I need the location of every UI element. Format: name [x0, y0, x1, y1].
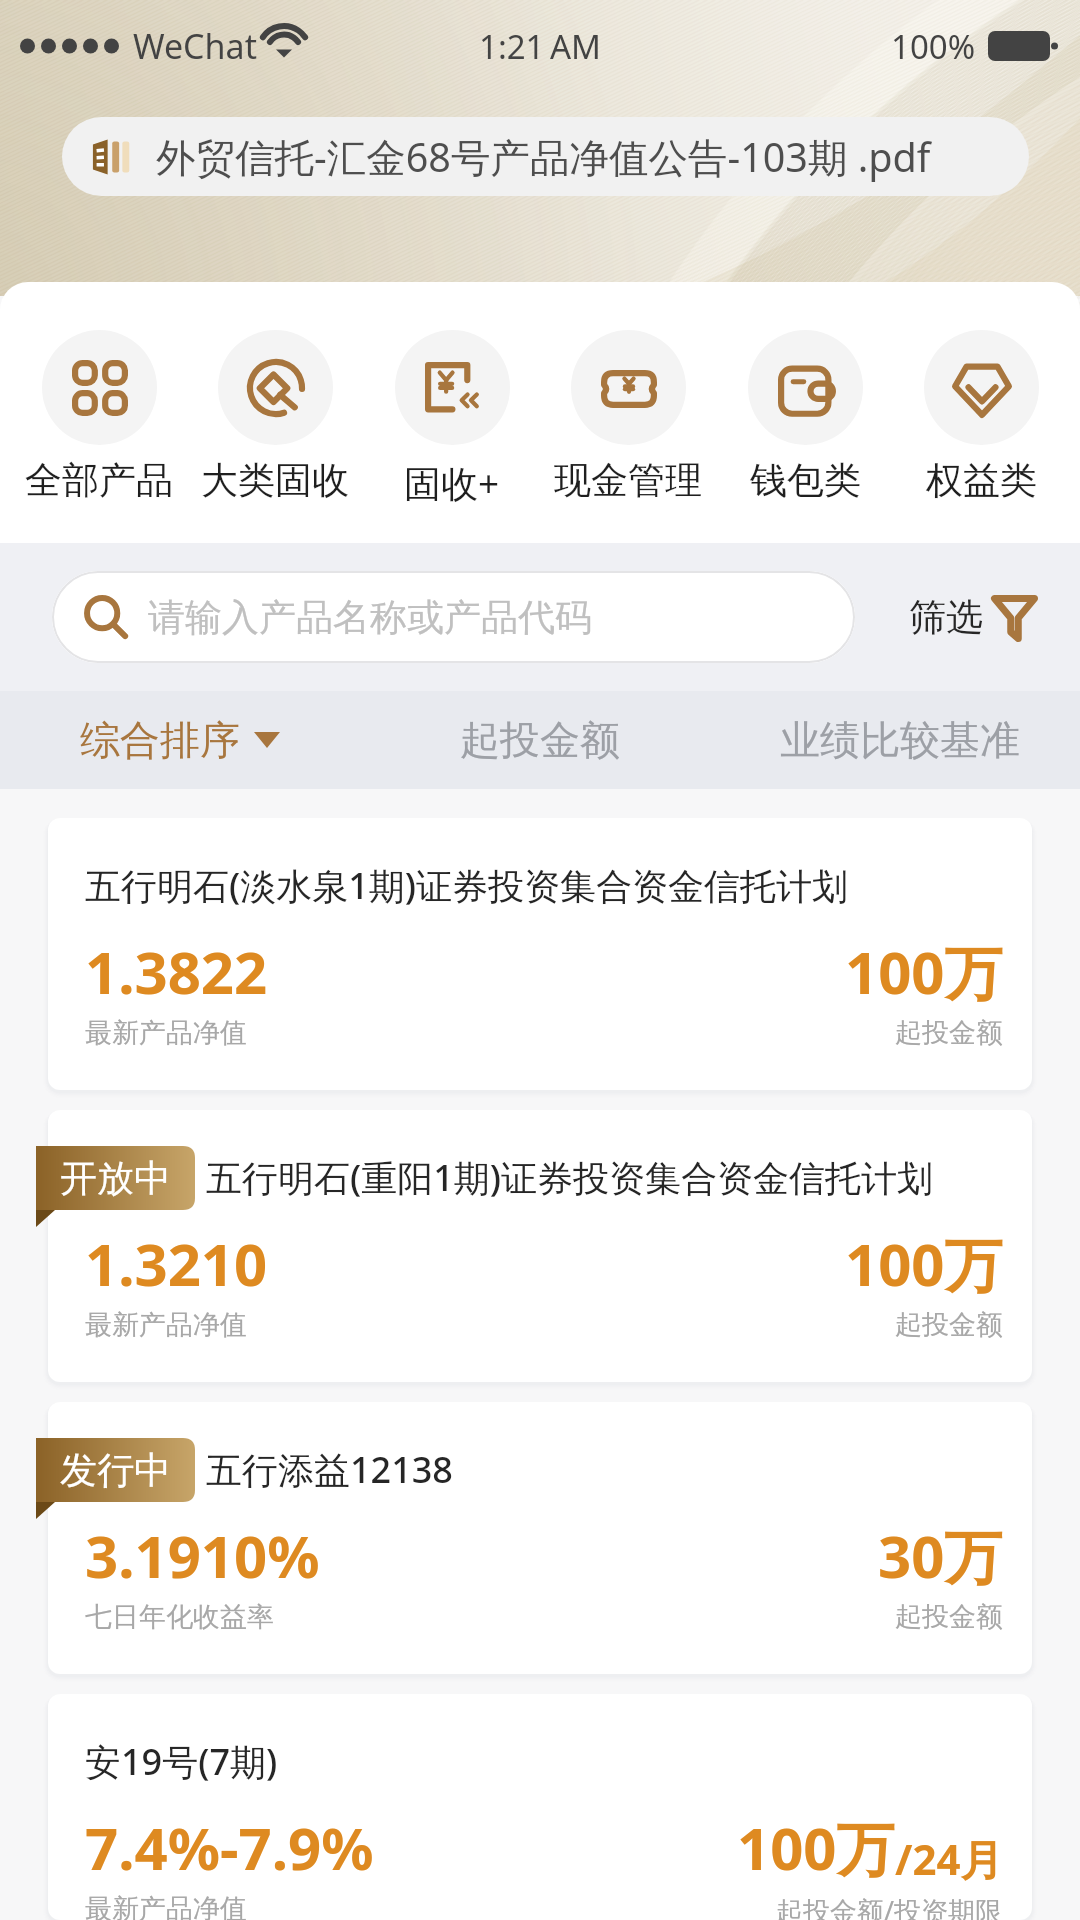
button[interactable]: 大类固收: [201, 330, 349, 504]
staticText: 五行明石(重阳1期)证券投资集合资金信托计划: [206, 1153, 934, 1202]
staticText: 起投金额/投资期限: [776, 1892, 1003, 1920]
staticText: 100万: [737, 1808, 895, 1887]
staticText: 综合排序: [80, 715, 240, 765]
staticText: WeChat: [133, 23, 257, 69]
button[interactable]: 外贸信托-汇金68号产品净值公告-103期 .pdf: [62, 117, 1029, 196]
staticText: 最新产品净值: [85, 1016, 247, 1050]
button[interactable]: 固收+: [378, 330, 526, 508]
staticText: 筛选: [909, 594, 983, 641]
staticText: 开放中: [60, 1155, 171, 1202]
staticText: 100万: [845, 1224, 1003, 1303]
button[interactable]: 全部产品: [25, 330, 173, 504]
staticText: 起投金额: [895, 1016, 1003, 1050]
staticText: 五行明石(淡水泉1期)证券投资集合资金信托计划: [85, 861, 849, 910]
button[interactable]: 业绩比较基准: [720, 691, 1080, 789]
staticText: 七日年化收益率: [85, 1600, 274, 1634]
staticText: 1.3822: [85, 932, 268, 1011]
staticText: 100%: [891, 24, 976, 69]
button[interactable]: 五行明石(淡水泉1期)证券投资集合资金信托计划: [48, 818, 1032, 1090]
button[interactable]: 现金管理: [554, 330, 702, 504]
staticText: 起投金额: [460, 715, 620, 765]
button[interactable]: 五行明石(重阳1期)证券投资集合资金信托计划: [48, 1110, 1032, 1382]
staticText: 最新产品净值: [85, 1308, 247, 1342]
staticText: 安19号(7期): [85, 1737, 278, 1786]
staticText: 起投金额: [895, 1600, 1003, 1634]
other: Search: [82, 593, 130, 641]
staticText: /24月: [895, 1830, 1003, 1887]
staticText: 30万: [878, 1516, 1003, 1595]
staticText: 3.1910%: [85, 1516, 320, 1595]
staticText: 1.3210: [85, 1224, 268, 1303]
staticText: 固收+: [404, 457, 500, 508]
staticText: 100万: [845, 932, 1003, 1011]
staticText: 业绩比较基准: [780, 715, 1020, 765]
staticText: 钱包类: [750, 457, 861, 504]
button[interactable]: 筛选: [895, 592, 1048, 642]
staticText: 请输入产品名称或产品代码: [148, 594, 592, 641]
staticText: 五行添益12138: [206, 1445, 453, 1494]
staticText: 7.4%-7.9%: [85, 1808, 374, 1887]
staticText: 1:21 AM: [479, 24, 601, 69]
button[interactable]: 安19号(7期): [48, 1694, 1032, 1920]
staticText: 外贸信托-汇金68号产品净值公告-103期 .pdf: [156, 130, 931, 184]
staticText: 发行中: [60, 1447, 171, 1494]
staticText: 全部产品: [25, 457, 173, 504]
staticText: 大类固收: [201, 457, 349, 504]
button[interactable]: 五行添益12138: [48, 1402, 1032, 1674]
other: Filter: [991, 592, 1038, 642]
button[interactable]: 权益类: [907, 330, 1055, 504]
button[interactable]: 综合排序: [0, 691, 360, 789]
staticText: 起投金额: [895, 1308, 1003, 1342]
staticText: 权益类: [926, 457, 1037, 504]
button[interactable]: 起投金额: [360, 691, 720, 789]
button[interactable]: 钱包类: [731, 330, 879, 504]
button[interactable]: Search: [52, 571, 855, 663]
staticText: 最新产品净值: [85, 1892, 247, 1920]
staticText: 现金管理: [554, 457, 702, 504]
